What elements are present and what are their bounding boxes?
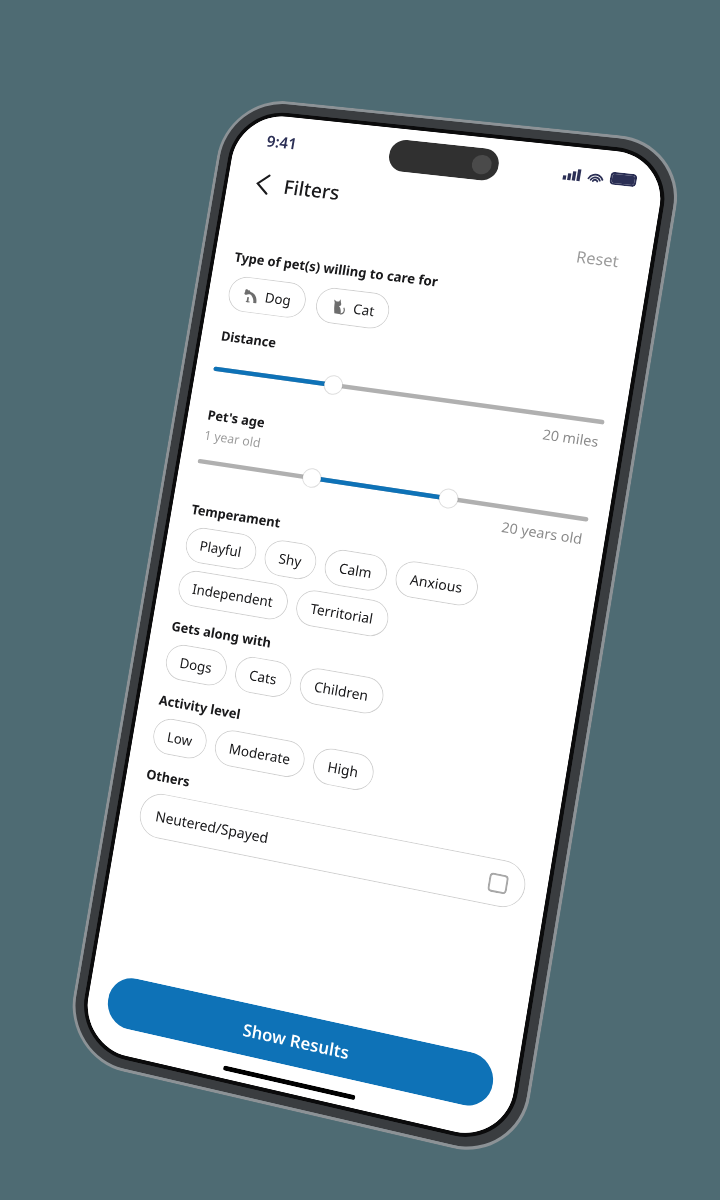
button[interactable]: Independent (176, 568, 291, 622)
staticText: Playful (198, 536, 243, 561)
staticText: 20 years old (500, 517, 584, 548)
button[interactable]: Children (297, 665, 386, 716)
staticText: Cats (248, 665, 278, 689)
staticText: Cat (352, 299, 376, 320)
staticText: Activity level (158, 691, 242, 723)
button[interactable]: Playful (183, 525, 259, 572)
staticText: Reset (575, 245, 621, 272)
button[interactable]: Low (150, 716, 210, 761)
staticText: Children (313, 677, 370, 705)
button[interactable]: Neutered/Spayed (136, 790, 529, 912)
staticText: Type of pet(s) willing to care for (233, 248, 439, 290)
staticText: 1 year old (203, 426, 263, 451)
staticText: Territorial (309, 599, 375, 628)
button[interactable]: Anxious (393, 558, 481, 608)
staticText: High (326, 757, 360, 781)
button[interactable]: High (310, 745, 377, 793)
staticText: 9:41 (265, 130, 299, 154)
staticText: Independent (191, 579, 275, 611)
button[interactable]: Dogs (163, 642, 230, 688)
staticText: Gets along with (170, 617, 273, 652)
staticText: Calm (338, 558, 374, 582)
button[interactable]: Dog (226, 275, 309, 320)
staticText: Distance (220, 327, 278, 351)
staticText: Show Results (241, 1018, 351, 1064)
button[interactable]: Reset (568, 241, 628, 277)
staticText: Filters (282, 174, 342, 206)
staticText: Temperament (190, 500, 282, 532)
button[interactable]: Calm (322, 547, 390, 593)
button[interactable]: Show Results (104, 973, 497, 1111)
staticText: 20 miles (541, 424, 600, 451)
staticText: Dog (264, 288, 293, 309)
staticText: Pet's age (206, 406, 266, 431)
button[interactable]: Shy (262, 538, 319, 582)
button[interactable]: Cat (313, 286, 392, 331)
staticText: Neutered/Spayed (154, 806, 271, 847)
staticText: Shy (277, 549, 303, 571)
button[interactable]: Cats (232, 654, 294, 700)
staticText: Others (145, 765, 192, 791)
button[interactable]: Moderate (212, 727, 308, 780)
button[interactable]: Territorial (293, 588, 391, 639)
button[interactable]: Back (244, 166, 281, 201)
staticText: Anxious (409, 570, 464, 597)
staticText: Low (166, 727, 194, 750)
staticText: Dogs (178, 653, 214, 677)
staticText: Moderate (228, 739, 292, 768)
